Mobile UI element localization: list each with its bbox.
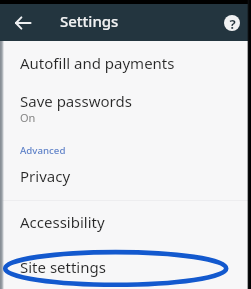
button[interactable]: Help [218,9,246,37]
staticText: ? [229,15,236,31]
staticText: Advanced [20,144,66,157]
staticText: Site settings [20,257,106,277]
staticText: Save passwords [20,91,132,111]
button[interactable]: Back [11,11,35,35]
staticText: On [20,110,36,124]
staticText: Settings [60,11,119,31]
button[interactable]: Save passwords [0,86,251,116]
button[interactable]: Site settings [0,252,251,282]
staticText: Privacy [20,166,71,186]
button[interactable]: Accessibility [0,207,251,237]
button[interactable]: Privacy [0,161,251,191]
button[interactable]: Autofill and payments [0,48,251,78]
staticText: Accessibility [20,212,105,232]
staticText: Autofill and payments [20,53,175,73]
